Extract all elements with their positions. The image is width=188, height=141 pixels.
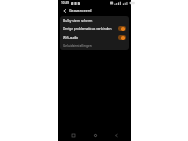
- button[interactable]: Startscherm: [88, 130, 102, 141]
- staticText: Geavanceerd: [69, 8, 92, 13]
- button[interactable]: Wifi-audio: [60, 33, 129, 42]
- button[interactable]: Bulky stem scherm: [60, 16, 129, 24]
- button[interactable]: Recente apps: [66, 130, 80, 141]
- button[interactable]: Derige problematicus verbinden: [60, 24, 129, 33]
- staticText: Wifi-audio: [63, 36, 79, 40]
- button[interactable]: Aan: [118, 35, 126, 40]
- button[interactable]: Aan: [118, 26, 126, 31]
- button[interactable]: Geluidsinstellingen: [60, 42, 129, 50]
- button[interactable]: Terug: [61, 7, 68, 14]
- button[interactable]: Terug: [109, 130, 123, 141]
- staticText: Bulky stem scherm: [63, 18, 93, 22]
- staticText: 10:39: [61, 1, 70, 5]
- staticText: Geluidsinstellingen: [63, 44, 92, 48]
- staticText: Derige problematicus verbinden: [63, 27, 112, 31]
